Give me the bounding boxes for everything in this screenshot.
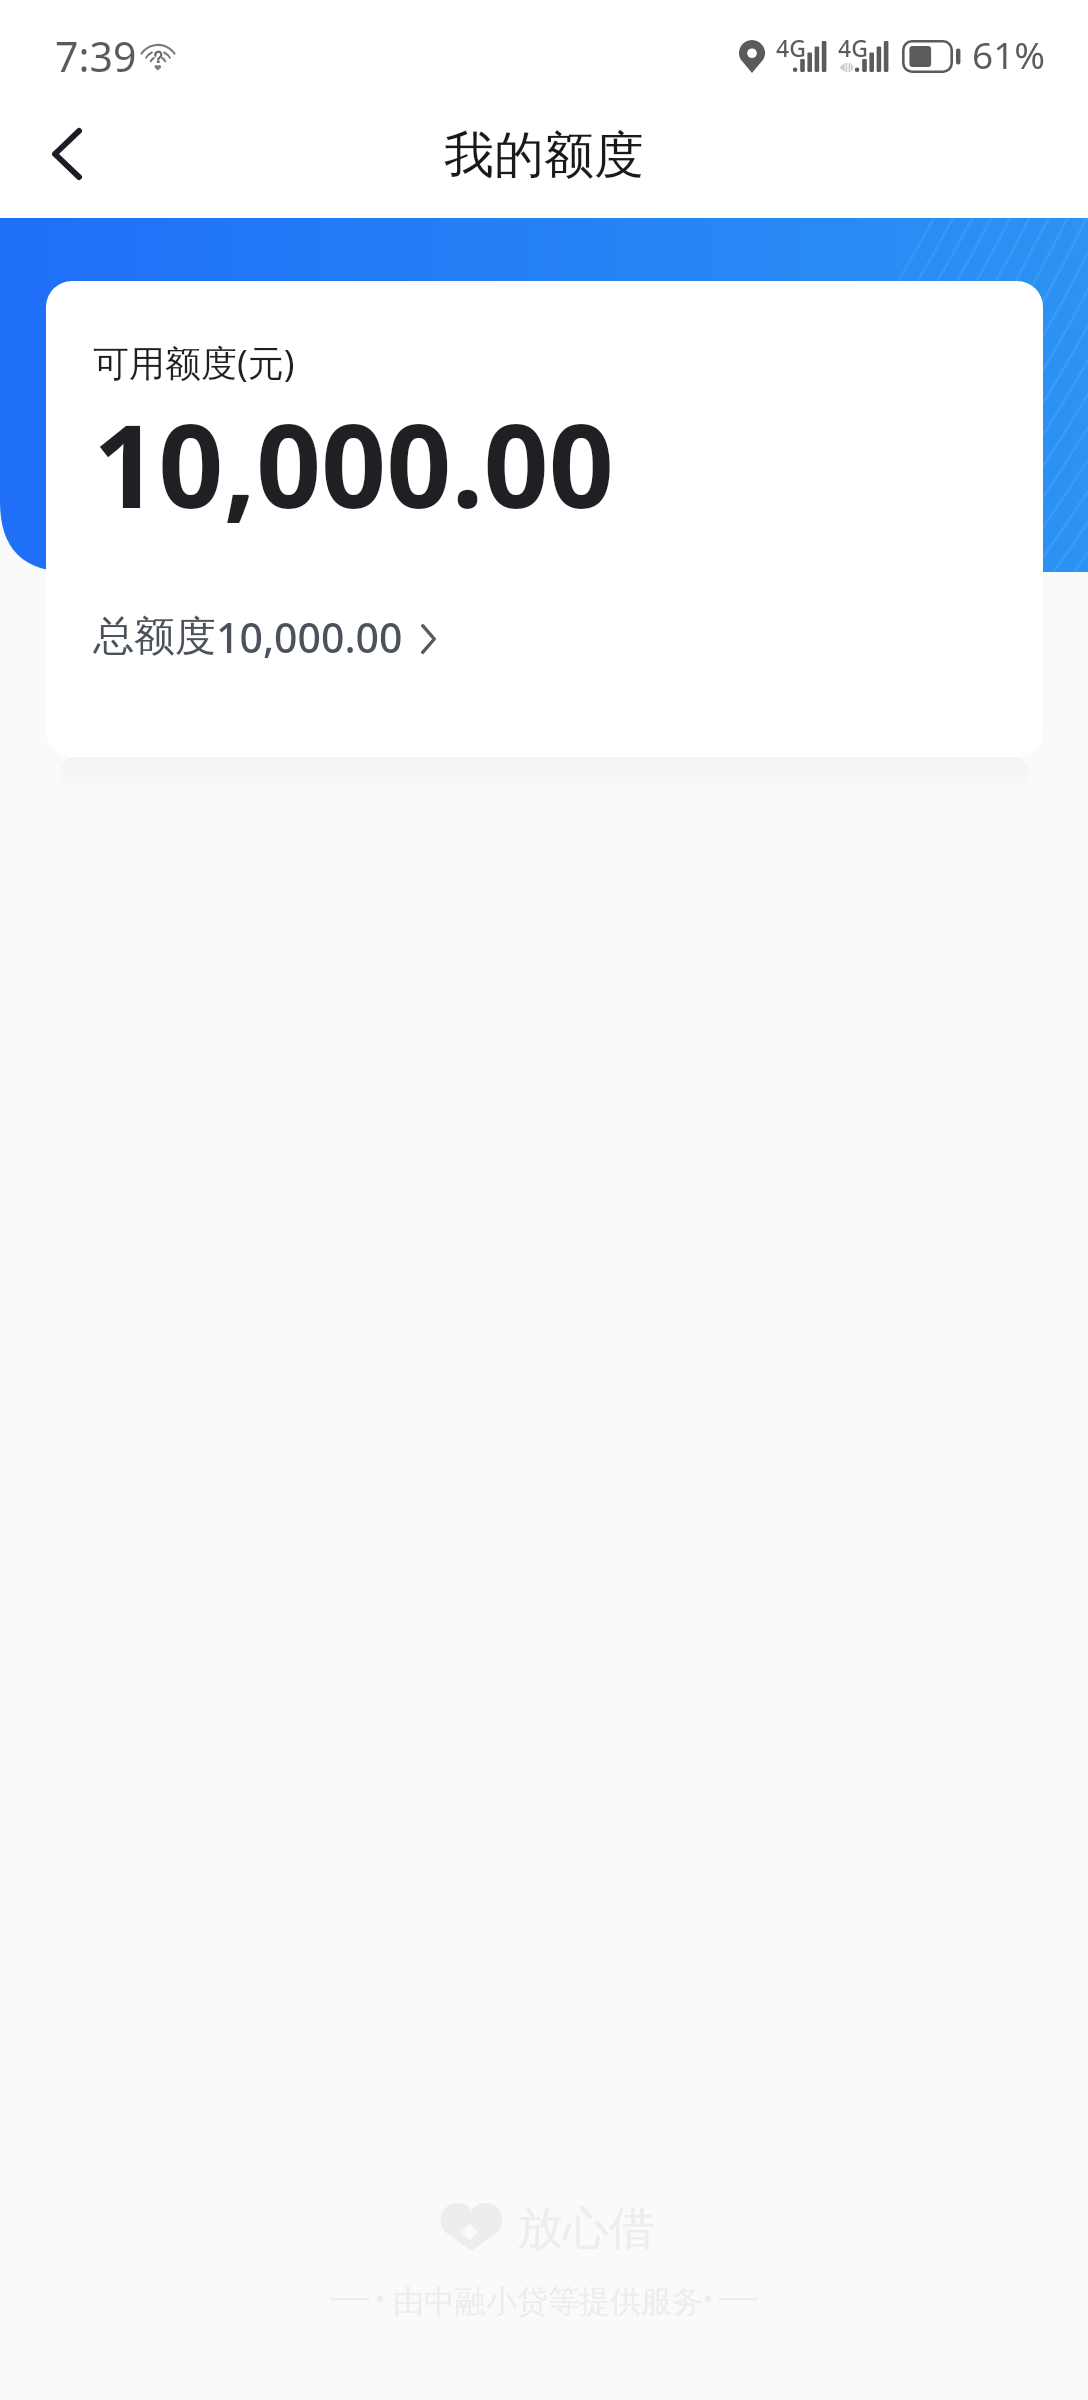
staticText: 7:39: [55, 28, 137, 84]
staticText: 总额度: [93, 611, 216, 663]
button[interactable]: 总额度: [86, 603, 443, 671]
staticText: 61%: [972, 29, 1046, 79]
staticText: 10,000.00: [216, 609, 403, 665]
staticText: 我的额度: [444, 124, 644, 187]
staticText: 可用额度(元): [93, 338, 295, 387]
staticText: 放心借: [517, 2200, 655, 2258]
staticText: 4G: [838, 32, 868, 63]
staticText: 由中融小贷等提供服务: [393, 2282, 703, 2321]
staticText: 4G: [776, 32, 806, 63]
button[interactable]: Back: [17, 104, 117, 204]
staticText: 10,000.00: [93, 386, 614, 541]
